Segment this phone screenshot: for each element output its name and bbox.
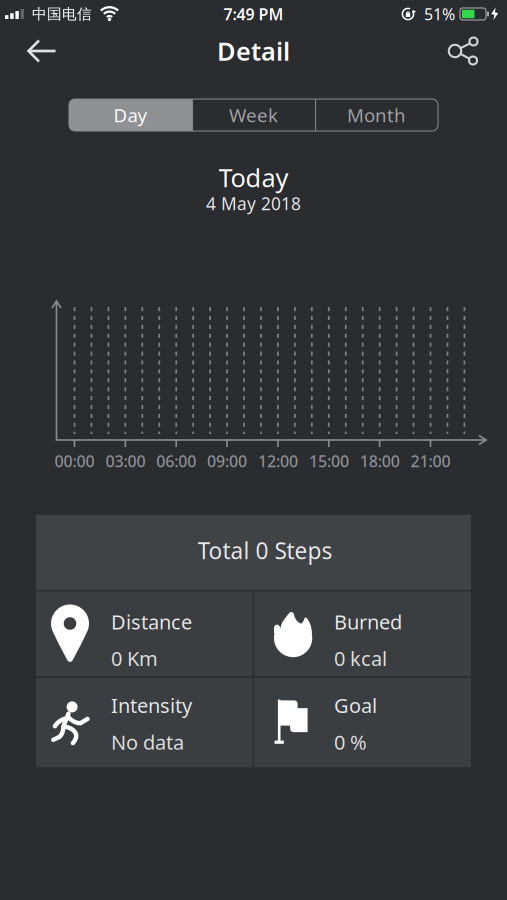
staticText: Burned — [334, 608, 402, 635]
button[interactable]: Share — [447, 34, 507, 68]
staticText: 中国电信 — [32, 5, 92, 23]
staticText: 06:00 — [156, 450, 196, 472]
staticText: 51% — [424, 3, 455, 25]
staticText: 0 Km — [111, 645, 158, 672]
button[interactable]: Week — [192, 99, 315, 131]
staticText: Detail — [217, 34, 290, 68]
staticText: Month — [347, 103, 406, 127]
staticText: Total 0 Steps — [197, 535, 332, 565]
staticText: 21:00 — [411, 450, 451, 472]
staticText: Distance — [111, 608, 192, 635]
staticText: 00:00 — [54, 450, 94, 472]
button[interactable]: Back — [0, 35, 57, 67]
staticText: 0 kcal — [334, 645, 387, 672]
staticText: 15:00 — [309, 450, 349, 472]
button[interactable]: Day — [69, 99, 192, 131]
staticText: Day — [113, 103, 147, 127]
staticText: 18:00 — [360, 450, 400, 472]
staticText: 09:00 — [207, 450, 247, 472]
staticText: Intensity — [111, 692, 192, 719]
staticText: 7:49 PM — [223, 3, 283, 25]
staticText: Today — [218, 161, 288, 194]
staticText: No data — [111, 729, 184, 755]
staticText: 12:00 — [258, 450, 298, 472]
staticText: 03:00 — [105, 450, 145, 472]
staticText: Goal — [334, 692, 377, 719]
staticText: 0 % — [334, 729, 367, 755]
staticText: 4 May 2018 — [206, 192, 301, 215]
staticText: Week — [229, 103, 278, 127]
button[interactable]: Month — [315, 99, 438, 131]
